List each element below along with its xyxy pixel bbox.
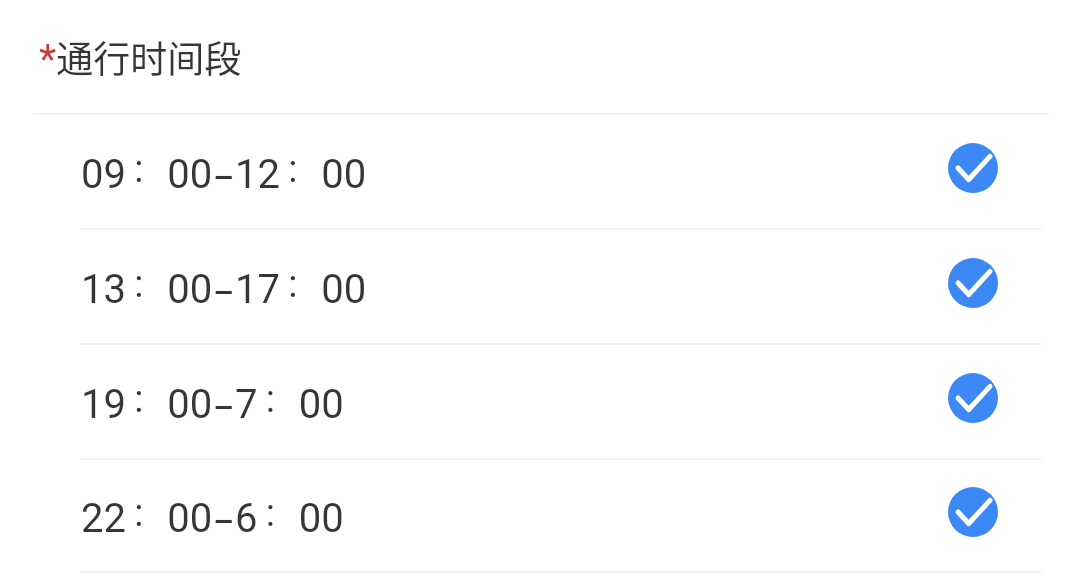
staticText: 22 : 00‒6 : 00 (81, 491, 344, 546)
other: Selected (948, 373, 998, 423)
staticText: 13 : 00‒17 : 00 (81, 262, 367, 317)
button[interactable]: 22 : 00‒6 : 00 (0, 460, 1080, 571)
button[interactable]: 09 : 00‒12 : 00 (0, 115, 1080, 228)
button[interactable]: 13 : 00‒17 : 00 (0, 230, 1080, 343)
staticText: 19 : 00‒7 : 00 (81, 377, 344, 432)
other: Selected (948, 487, 998, 537)
staticText: *通行时间段 (39, 30, 242, 84)
staticText: 09 : 00‒12 : 00 (81, 147, 367, 202)
other: Selected (948, 258, 998, 308)
other: Selected (948, 143, 998, 193)
button[interactable]: 19 : 00‒7 : 00 (0, 345, 1080, 458)
